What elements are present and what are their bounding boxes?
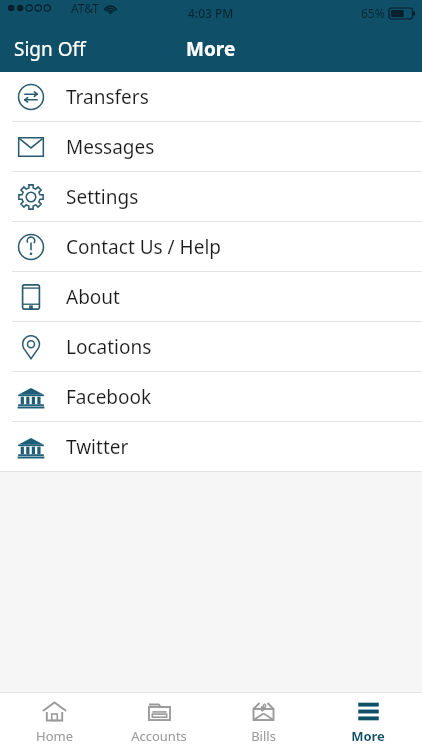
staticText: Accounts: [131, 727, 187, 745]
staticText: 4:03 PM: [188, 5, 234, 21]
staticText: 65%: [361, 5, 385, 21]
staticText: Sign Off: [14, 36, 86, 62]
button[interactable]: Accounts: [109, 693, 209, 750]
staticText: Locations: [66, 334, 152, 360]
staticText: Messages: [66, 134, 155, 160]
staticText: About: [66, 284, 120, 310]
staticText: Settings: [66, 184, 139, 210]
button[interactable]: Bills: [213, 693, 313, 750]
staticText: Home: [36, 727, 73, 745]
button[interactable]: Contact Us / Help: [0, 222, 422, 271]
button[interactable]: Transfers: [0, 72, 422, 121]
button[interactable]: More: [318, 693, 418, 750]
staticText: Contact Us / Help: [66, 234, 222, 260]
staticText: Transfers: [66, 84, 149, 110]
button[interactable]: Facebook: [0, 372, 422, 421]
staticText: Twitter: [66, 434, 129, 460]
staticText: AT&T: [71, 0, 99, 16]
button[interactable]: About: [0, 272, 422, 321]
button[interactable]: Messages: [0, 122, 422, 171]
button[interactable]: Home: [4, 693, 104, 750]
button[interactable]: Twitter: [0, 422, 422, 471]
staticText: Facebook: [66, 384, 152, 410]
button[interactable]: Sign Off: [0, 28, 100, 70]
button[interactable]: Locations: [0, 322, 422, 371]
staticText: More: [186, 36, 236, 62]
staticText: More: [351, 727, 385, 745]
staticText: Bills: [251, 727, 276, 745]
button[interactable]: Settings: [0, 172, 422, 221]
